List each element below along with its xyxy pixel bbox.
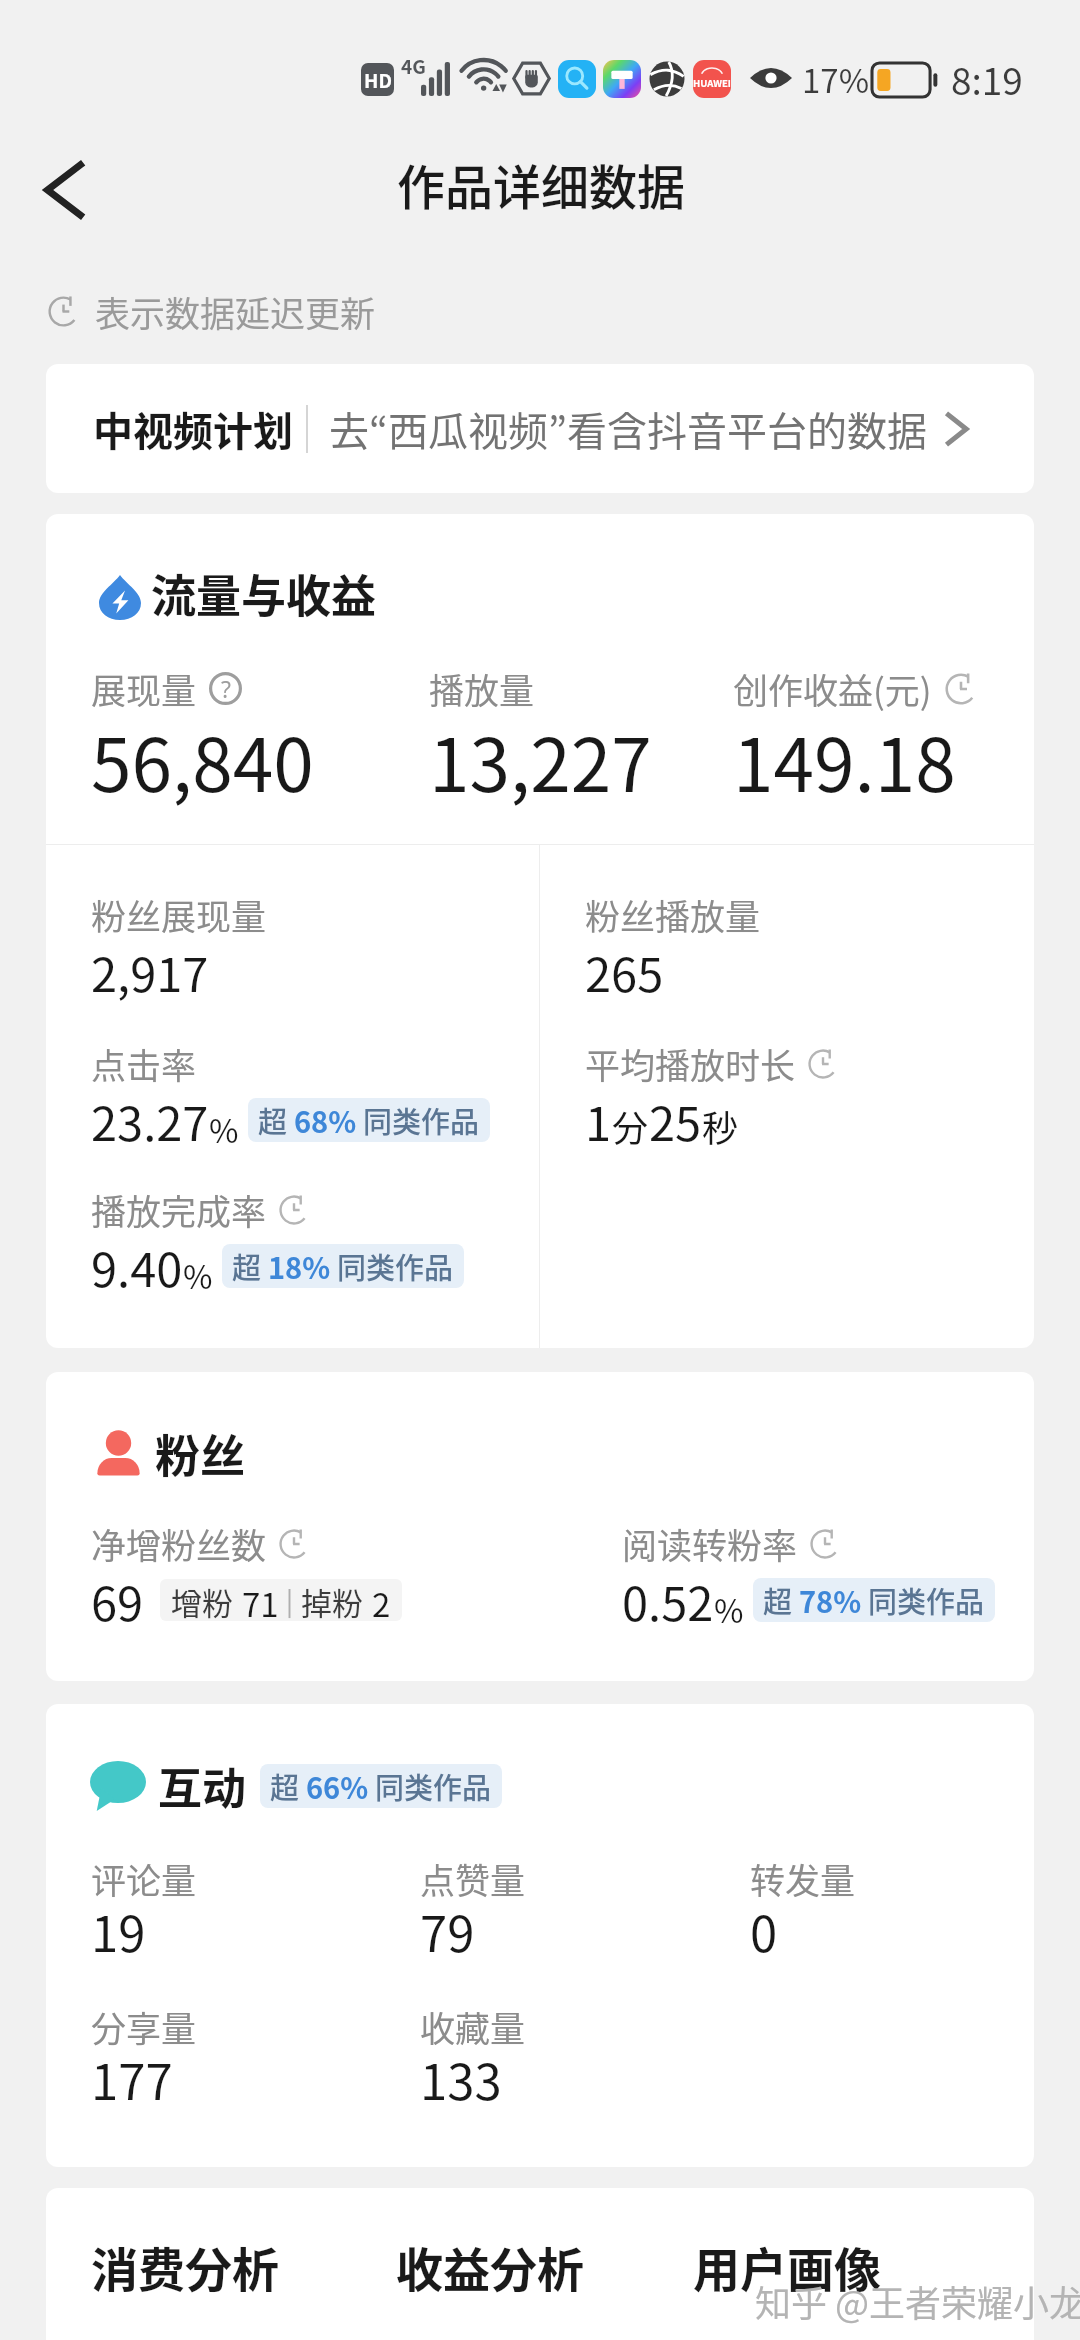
staticText: 265 <box>585 937 664 1005</box>
staticText: 粉丝展现量 <box>91 889 267 940</box>
staticText: 去“西瓜视频”看含抖音平台的数据 <box>329 400 927 458</box>
staticText: 流量与收益 <box>151 561 377 626</box>
staticText: 点击率 <box>91 1038 197 1089</box>
button[interactable]: Back <box>30 155 100 225</box>
staticText: 净增粉丝数 <box>91 1518 267 1569</box>
staticText: 表示数据延迟更新 <box>95 286 376 337</box>
staticText: 17% <box>802 55 870 103</box>
button[interactable]: 用户画像 <box>693 2232 881 2300</box>
staticText: 阅读转粉率 <box>622 1518 798 1569</box>
staticText: 2,917 <box>91 937 209 1005</box>
staticText: 知乎 @王者荣耀小龙 <box>755 2275 1080 2327</box>
staticText: 超 <box>270 1765 300 1807</box>
staticText: 作品详细数据 <box>397 149 686 219</box>
staticText: 分 <box>612 1100 649 1152</box>
staticText: 中视频计划 <box>93 400 293 458</box>
staticText: 71 <box>242 1579 279 1621</box>
staticText: 掉粉 <box>301 1579 363 1621</box>
staticText: 粉丝播放量 <box>585 889 761 940</box>
button[interactable]: 中视频计划 <box>46 364 1034 493</box>
staticText: 分享量 <box>91 2001 197 2052</box>
staticText: 149.18 <box>733 707 956 813</box>
staticText: 评论量 <box>91 1853 197 1904</box>
staticText: 13,227 <box>429 707 652 813</box>
staticText: 同类作品 <box>868 1579 985 1621</box>
staticText: 展现量 <box>91 663 197 714</box>
staticText: 133 <box>420 2043 502 2114</box>
staticText: | <box>286 1581 294 1619</box>
staticText: 超 <box>763 1579 793 1621</box>
staticText: 秒 <box>702 1100 739 1152</box>
staticText: 0 <box>750 1895 778 1966</box>
staticText: 18% <box>268 1245 331 1287</box>
staticText: 收藏量 <box>420 2001 526 2052</box>
staticText: HUAWEI <box>693 76 731 90</box>
button[interactable]: 消费分析 <box>91 2232 279 2300</box>
staticText: 播放完成率 <box>91 1184 267 1235</box>
staticText: 56,840 <box>91 707 314 813</box>
staticText: 增粉 <box>171 1579 233 1621</box>
staticText: 1 <box>585 1086 612 1154</box>
staticText: 粉丝 <box>155 1421 246 1486</box>
staticText: 平均播放时长 <box>585 1038 796 1089</box>
staticText: 播放量 <box>429 663 535 714</box>
staticText: 68% <box>294 1099 357 1141</box>
staticText: 66% <box>306 1765 369 1807</box>
staticText: 互动 <box>158 1754 246 1818</box>
staticText: 177 <box>91 2043 173 2114</box>
staticText: 超 <box>258 1099 288 1141</box>
staticText: 19 <box>91 1895 146 1966</box>
staticText: 69 <box>91 1566 144 1634</box>
staticText: 23.27 <box>91 1086 209 1154</box>
staticText: 收益分析 <box>396 2232 584 2300</box>
staticText: 4G <box>401 52 426 80</box>
staticText: 创作收益(元) <box>733 663 932 714</box>
staticText: 转发量 <box>750 1853 856 1904</box>
staticText: 用户画像 <box>693 2232 881 2300</box>
button[interactable]: 收益分析 <box>396 2232 584 2300</box>
staticText: 同类作品 <box>337 1245 454 1287</box>
staticText: 0.52 <box>622 1566 714 1634</box>
staticText: % <box>714 1586 744 1632</box>
staticText: 超 <box>232 1245 262 1287</box>
staticText: 78% <box>799 1579 862 1621</box>
staticText: 8:19 <box>951 52 1023 106</box>
staticText: 2 <box>372 1579 391 1621</box>
staticText: 25 <box>649 1086 702 1154</box>
staticText: % <box>183 1252 213 1298</box>
staticText: ? <box>221 673 231 704</box>
staticText: 点赞量 <box>420 1853 526 1904</box>
staticText: 消费分析 <box>91 2232 279 2300</box>
staticText: 9.40 <box>91 1232 183 1300</box>
staticText: 同类作品 <box>363 1099 480 1141</box>
staticText: % <box>209 1106 239 1152</box>
staticText: 79 <box>420 1895 475 1966</box>
staticText: 同类作品 <box>375 1765 492 1807</box>
staticText: HD <box>364 66 392 94</box>
